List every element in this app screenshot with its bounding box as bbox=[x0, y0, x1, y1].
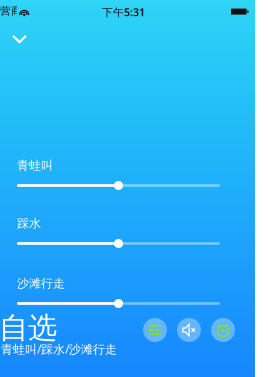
staticText: 踩水 bbox=[17, 216, 41, 231]
staticText: 营商 bbox=[0, 4, 22, 17]
staticText: 青蛙叫/踩水/沙滩行走 bbox=[1, 341, 117, 357]
button[interactable]: Mute bbox=[177, 318, 201, 342]
staticText: 自选 bbox=[0, 310, 57, 346]
button[interactable]: Sleep timer bbox=[211, 318, 235, 342]
button[interactable]: Close bbox=[0, 28, 39, 50]
staticText: 青蛙叫 bbox=[17, 158, 53, 173]
staticText: 沙滩行走 bbox=[17, 276, 65, 291]
button[interactable]: Mixer bbox=[143, 318, 167, 342]
staticText: 下午5:31 bbox=[102, 5, 145, 19]
